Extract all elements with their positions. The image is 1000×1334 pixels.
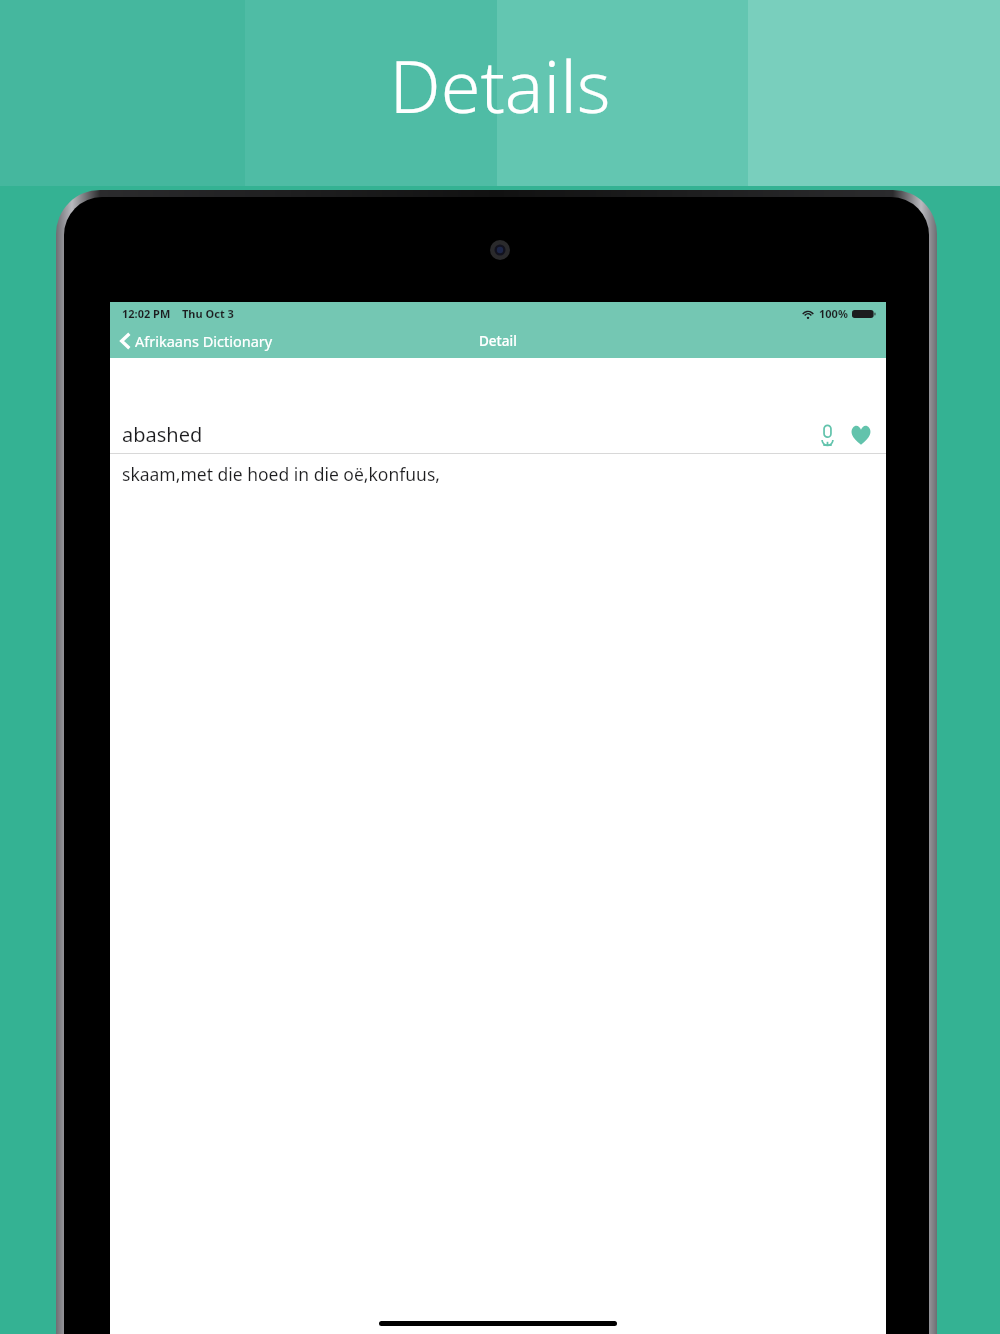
staticText: 12:02 PM xyxy=(122,306,171,321)
staticText: Thu Oct 3 xyxy=(182,306,234,321)
button[interactable]: Favourite xyxy=(846,420,876,450)
staticText: skaam,met die hoed in die oë,konfuus, xyxy=(122,462,440,486)
staticText: Details xyxy=(389,36,611,134)
staticText: Detail xyxy=(479,332,517,350)
button[interactable]: Afrikaans Dictionary xyxy=(110,327,283,355)
staticText: Afrikaans Dictionary xyxy=(135,331,273,351)
staticText: abashed xyxy=(122,421,812,448)
staticText: 100% xyxy=(819,306,848,321)
button[interactable]: Pronounce xyxy=(812,420,842,450)
